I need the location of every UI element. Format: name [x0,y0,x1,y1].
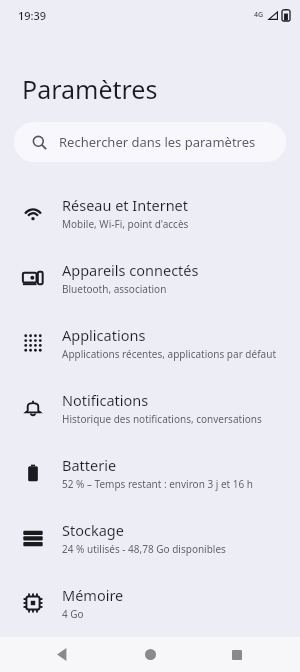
button[interactable]: Batterie [0,440,300,505]
staticText: Appareils connectés [62,260,199,280]
staticText: Applications récentes, applications par … [62,347,276,361]
button[interactable]: Applications [0,310,300,375]
button[interactable]: Réseau et Internet [0,180,300,245]
button[interactable]: Rechercher dans les paramètres [14,122,286,162]
staticText: Mémoire [62,585,124,605]
staticText: Paramètres [22,72,158,106]
button[interactable]: Recent apps [213,637,261,672]
staticText: 4G [254,10,264,20]
staticText: Historique des notifications, conversati… [62,412,262,426]
button[interactable]: Back [39,637,87,672]
button[interactable]: Home [126,637,174,672]
staticText: Rechercher dans les paramètres [59,133,256,151]
staticText: 52 % – Temps restant : environ 3 j et 16… [62,477,253,491]
button[interactable]: Appareils connectés [0,245,300,310]
staticText: Bluetooth, association [62,282,167,296]
staticText: Applications [62,325,146,345]
staticText: Stockage [62,520,124,540]
staticText: Mobile, Wi-Fi, point d'accès [62,217,189,231]
button[interactable]: Notifications [0,375,300,440]
staticText: Batterie [62,455,117,475]
button[interactable]: Mémoire [0,570,300,635]
staticText: 24 % utilisés - 48,78 Go disponibles [62,542,226,556]
button[interactable]: Stockage [0,505,300,570]
staticText: Réseau et Internet [62,195,189,215]
staticText: 19:39 [18,8,47,23]
staticText: 4 Go [62,607,84,621]
staticText: Notifications [62,390,149,410]
